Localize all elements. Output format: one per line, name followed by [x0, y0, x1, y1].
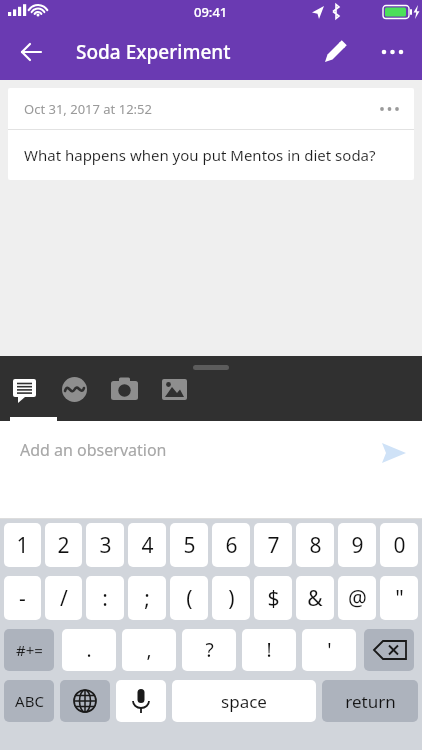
staticText: , [146, 637, 152, 663]
staticText: What happens when you put Mentos in diet… [24, 145, 376, 165]
button[interactable]: Backspace [364, 629, 414, 671]
button[interactable]: Sensors [50, 374, 100, 414]
button[interactable]: 1 [4, 523, 41, 567]
button[interactable]: Dictation [116, 680, 166, 722]
button[interactable]: 5 [170, 523, 208, 567]
staticText: ABC [15, 691, 44, 711]
button[interactable]: Note options [372, 91, 408, 127]
button[interactable]: 9 [338, 523, 376, 567]
button[interactable]: / [45, 576, 82, 620]
button[interactable]: 4 [128, 523, 166, 567]
button[interactable]: @ [338, 576, 376, 620]
staticText: ! [266, 637, 272, 663]
button[interactable]: ( [170, 576, 208, 620]
staticText: - [19, 584, 26, 613]
staticText: 2 [57, 531, 70, 560]
button[interactable]: return [322, 680, 418, 722]
button[interactable]: Send [372, 431, 416, 475]
staticText: 09:41 [194, 3, 228, 21]
staticText: ? [205, 637, 214, 663]
button[interactable]: " [380, 576, 418, 620]
staticText: 0 [393, 531, 406, 560]
button[interactable]: : [86, 576, 124, 620]
button[interactable]: Edit [313, 30, 357, 74]
staticText: ' [327, 637, 332, 663]
button[interactable]: $ [254, 576, 292, 620]
staticText: / [60, 584, 68, 613]
button[interactable]: ' [302, 629, 356, 671]
staticText: ( [186, 584, 193, 613]
staticText: ) [228, 584, 235, 613]
staticText: Oct 31, 2017 at 12:52 [24, 100, 152, 118]
button[interactable]: - [4, 576, 41, 620]
staticText: " [395, 584, 404, 613]
staticText: ; [144, 584, 150, 613]
staticText: 1 [16, 531, 29, 560]
staticText: & [307, 584, 323, 613]
staticText: 7 [267, 531, 280, 560]
button[interactable]: . [62, 629, 116, 671]
staticText: 6 [225, 531, 238, 560]
staticText: 8 [309, 531, 322, 560]
button[interactable]: , [122, 629, 176, 671]
staticText: 9 [351, 531, 364, 560]
button[interactable]: 6 [212, 523, 250, 567]
button[interactable]: ) [212, 576, 250, 620]
staticText: 5 [183, 531, 196, 560]
button[interactable]: & [296, 576, 334, 620]
staticText: . [86, 637, 92, 663]
staticText: : [102, 584, 108, 613]
staticText: space [221, 690, 267, 713]
staticText: @ [348, 584, 367, 613]
staticText: Add an observation [20, 439, 167, 461]
button[interactable]: Camera [100, 374, 150, 414]
button[interactable]: Change keyboard [60, 680, 110, 722]
staticText: 4 [141, 531, 154, 560]
button[interactable]: 2 [45, 523, 82, 567]
button[interactable]: Gallery [150, 374, 200, 414]
button[interactable]: space [172, 680, 316, 722]
button[interactable]: ? [182, 629, 236, 671]
button[interactable]: ; [128, 576, 166, 620]
staticText: return [345, 690, 396, 713]
button[interactable]: More options [370, 30, 414, 74]
button[interactable]: #+= [4, 629, 54, 671]
button[interactable]: 3 [86, 523, 124, 567]
button[interactable]: 8 [296, 523, 334, 567]
staticText: 3 [99, 531, 112, 560]
button[interactable]: Oct 31, 2017 at 12:52 [8, 88, 414, 180]
button[interactable]: Text notes [0, 374, 50, 414]
button[interactable]: ABC [4, 680, 54, 722]
button[interactable]: 7 [254, 523, 292, 567]
button[interactable]: 0 [380, 523, 418, 567]
staticText: $ [267, 584, 280, 613]
button[interactable]: ! [242, 629, 296, 671]
staticText: #+= [16, 640, 43, 660]
button[interactable]: Back [10, 30, 54, 74]
staticText: Soda Experiment [76, 39, 231, 65]
